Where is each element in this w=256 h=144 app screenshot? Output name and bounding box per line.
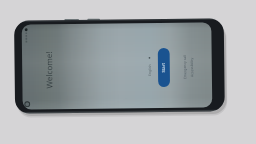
button[interactable]: Android setup welcome screen on phone xyxy=(0,0,256,144)
